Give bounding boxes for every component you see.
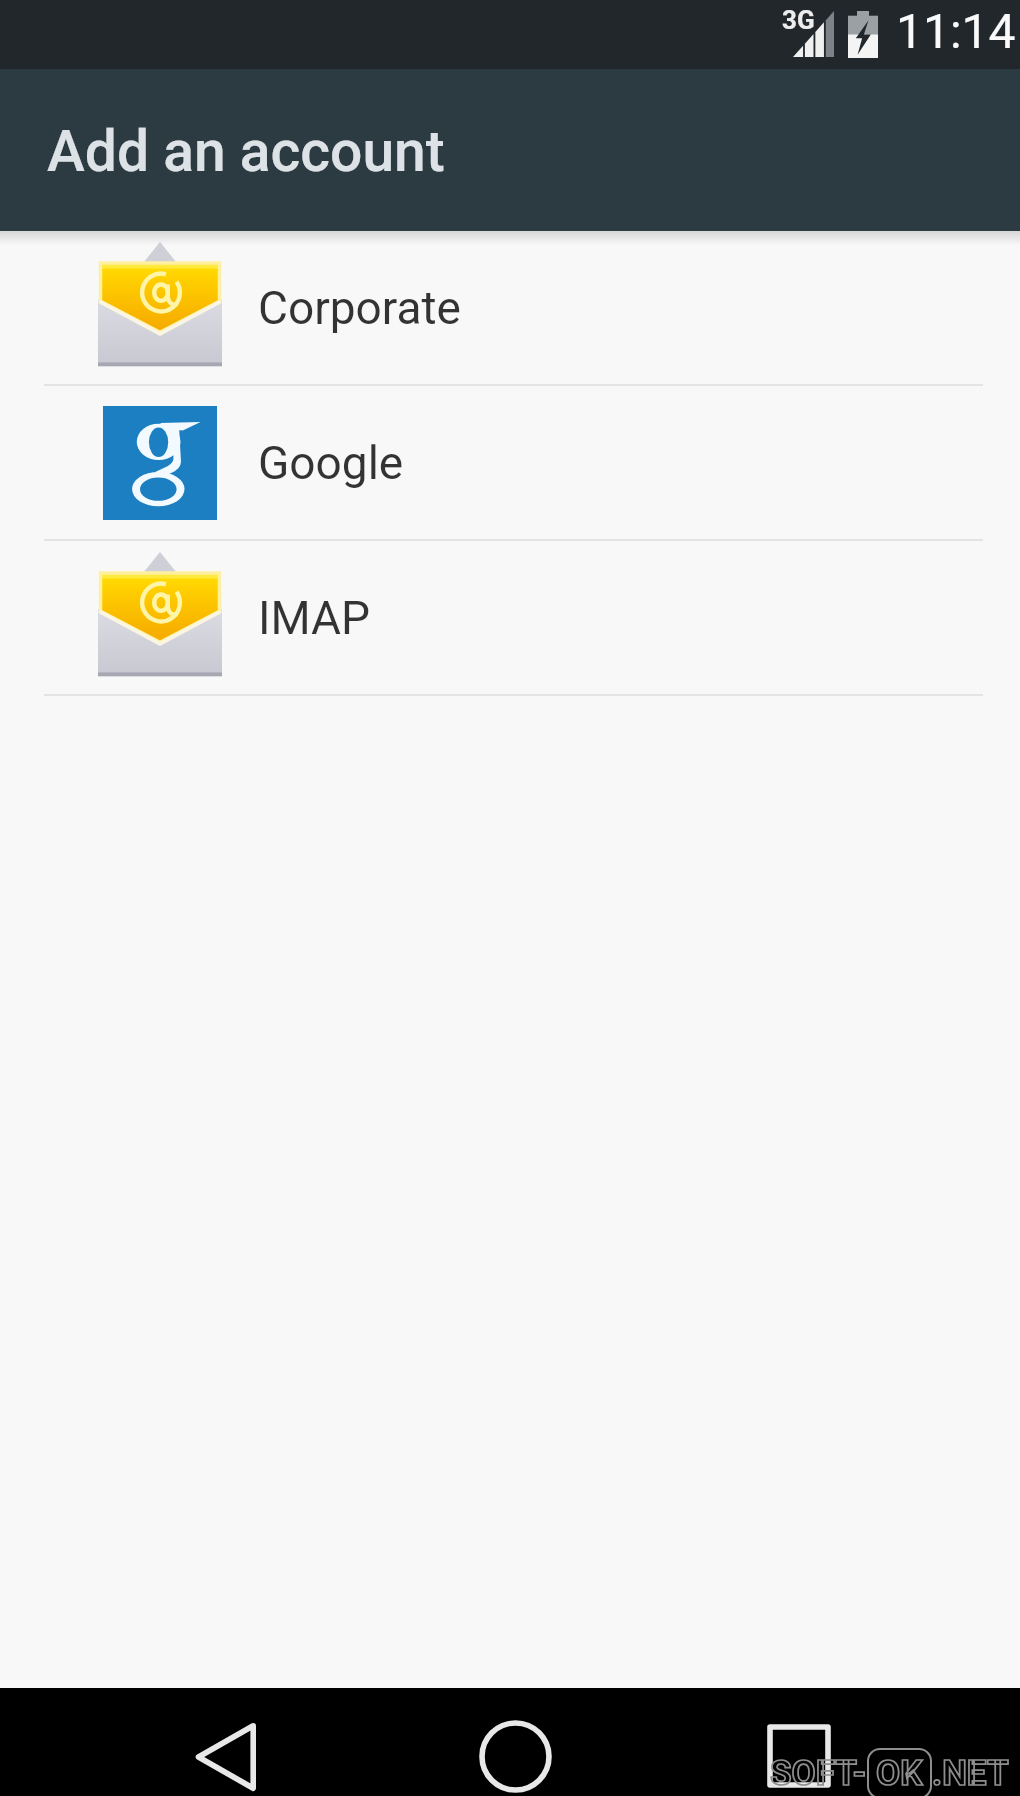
staticText: SOFT-	[770, 1753, 867, 1794]
staticText: Add an account	[47, 118, 445, 185]
button[interactable]: Home	[448, 1691, 582, 1796]
staticText: Corporate	[258, 281, 461, 335]
button[interactable]: Recent apps	[732, 1691, 866, 1796]
staticText: OK	[876, 1753, 923, 1794]
staticText: .NET	[932, 1753, 1009, 1794]
staticText: Google	[258, 436, 404, 490]
staticText: 11:14	[896, 3, 1016, 59]
button[interactable]: IMAP	[0, 541, 1020, 694]
button[interactable]: Back	[158, 1691, 292, 1796]
staticText: 3G	[782, 5, 815, 35]
button[interactable]: Corporate	[0, 231, 1020, 384]
button[interactable]: Google	[0, 386, 1020, 539]
staticText: IMAP	[258, 591, 371, 645]
